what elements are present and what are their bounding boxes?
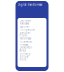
button[interactable]: Notifikasi — [19, 37, 44, 40]
button[interactable]: Transaksi — [19, 22, 44, 25]
button[interactable]: Dokumen — [19, 46, 44, 49]
staticText: Profil — [19, 34, 27, 37]
button[interactable]: Keamanan — [19, 40, 44, 43]
button[interactable]: Riwayat — [19, 43, 44, 46]
staticText: Laporan — [19, 25, 29, 28]
staticText: Keamanan — [19, 40, 32, 43]
button[interactable]: Profil — [19, 34, 44, 37]
button[interactable]: Arsip — [19, 49, 44, 52]
staticText: Tentang — [19, 52, 30, 55]
staticText: Transaksi — [19, 22, 29, 25]
button[interactable]: Versi — [19, 58, 44, 61]
staticText: Notifikasi — [19, 37, 31, 40]
button[interactable]: Bantuan — [19, 31, 44, 34]
button[interactable]: Overview — [19, 19, 44, 22]
staticText: Pengaturan — [19, 28, 35, 31]
button[interactable]: Keluar — [19, 55, 44, 58]
staticText: Bantuan — [19, 31, 30, 34]
staticText: Arsip — [19, 49, 26, 52]
staticText: Digital Transformasi — [17, 3, 42, 6]
staticText: Riwayat — [19, 43, 28, 46]
staticText: Overview — [19, 19, 30, 22]
staticText: Versi — [19, 58, 26, 61]
button[interactable]: Laporan — [19, 25, 44, 28]
button[interactable]: Tentang — [19, 52, 44, 55]
button[interactable]: Pengaturan — [19, 28, 44, 31]
staticText: Dokumen — [19, 46, 32, 49]
staticText: Keluar — [19, 55, 28, 58]
